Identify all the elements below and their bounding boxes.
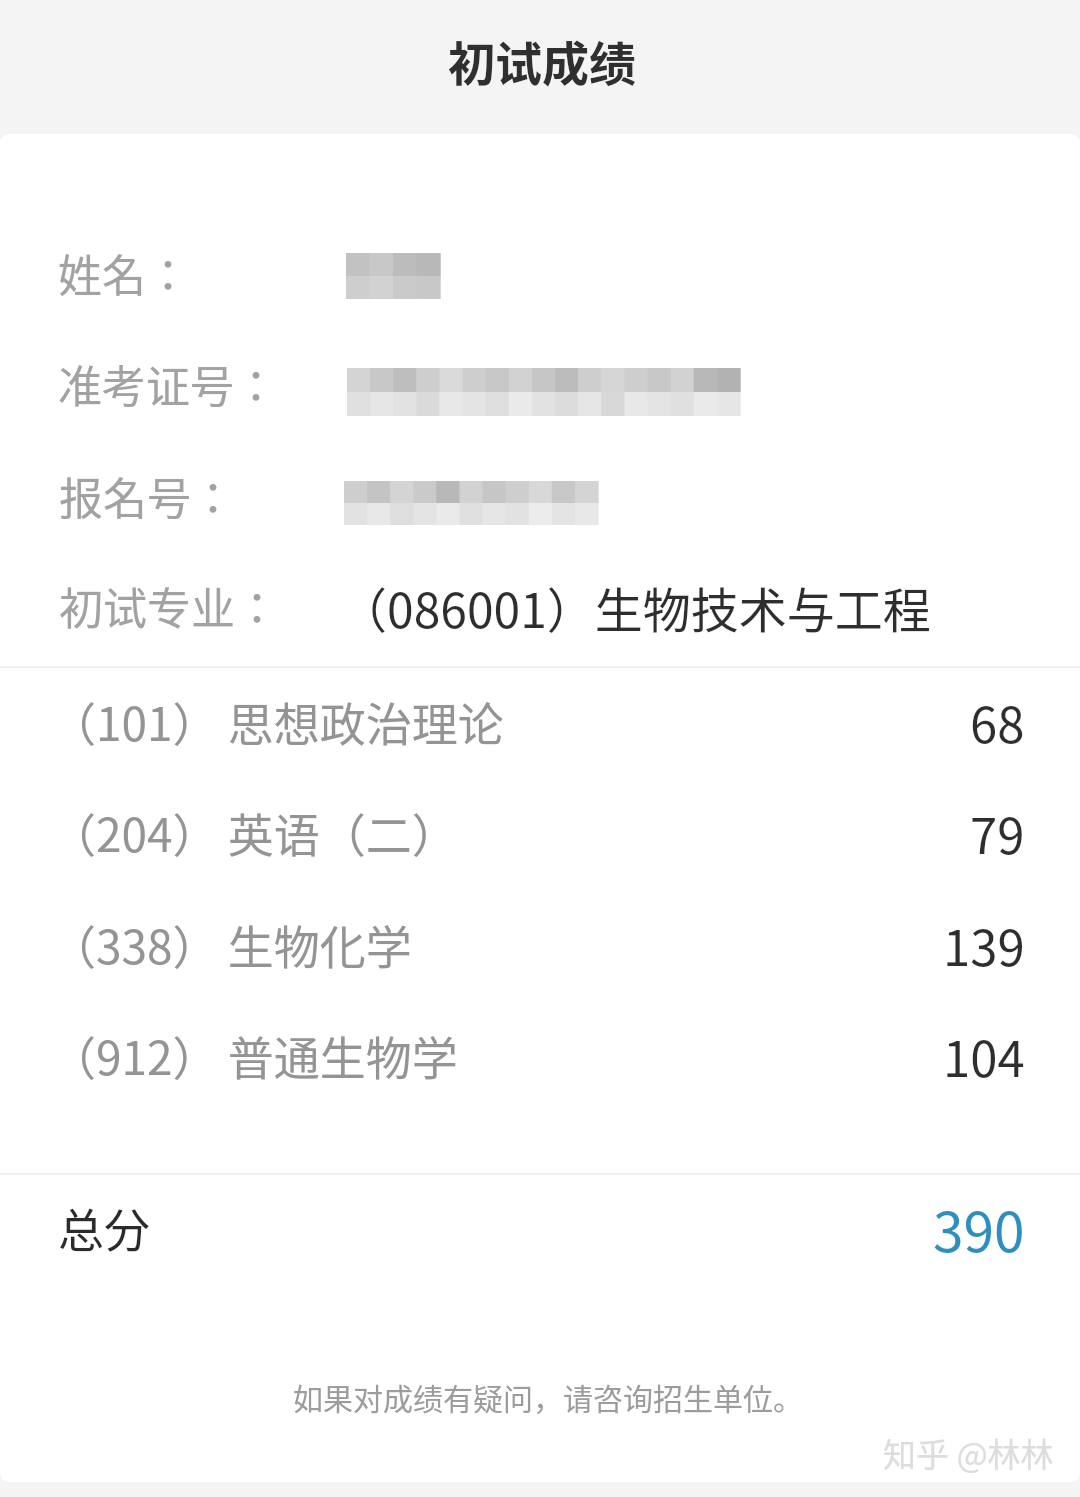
staticText: （101） 思想政治理论 — [50, 688, 504, 755]
staticText: 姓名： — [58, 241, 190, 305]
button[interactable]: 报名号 — [0, 442, 1080, 553]
staticText: （912） 普通生物学 — [50, 1022, 458, 1089]
button[interactable]: （204） 英语（二） — [0, 777, 1080, 888]
staticText: 知乎 @林林 — [883, 1429, 1054, 1477]
staticText: （086001）生物技术与工程 — [339, 572, 931, 642]
staticText: 初试成绩 — [448, 26, 636, 94]
staticText: 390 — [933, 1188, 1025, 1268]
staticText: 总分 — [58, 1194, 150, 1261]
button[interactable]: （912） 普通生物学 — [0, 1000, 1080, 1111]
staticText: 79 — [970, 797, 1025, 868]
staticText: 如果对成绩有疑问，请咨询招生单位。 — [293, 1375, 803, 1418]
button[interactable]: 准考证号 — [0, 330, 1080, 441]
staticText: 初试专业： — [59, 574, 279, 638]
staticText: 准考证号： — [58, 352, 278, 416]
button[interactable]: 初试成绩 — [0, 0, 1080, 134]
staticText: 报名号： — [59, 464, 235, 528]
button[interactable]: 初试专业 — [0, 552, 1080, 663]
button[interactable]: （101） 思想政治理论 — [0, 666, 1080, 777]
button[interactable]: 姓名 — [0, 219, 1080, 330]
staticText: 68 — [970, 686, 1025, 757]
staticText: （204） 英语（二） — [50, 799, 458, 866]
button[interactable]: （338） 生物化学 — [0, 889, 1080, 1000]
staticText: （338） 生物化学 — [50, 911, 412, 978]
staticText: 104 — [943, 1020, 1025, 1091]
staticText: 139 — [943, 909, 1025, 980]
button[interactable]: 总分 — [0, 1172, 1080, 1283]
